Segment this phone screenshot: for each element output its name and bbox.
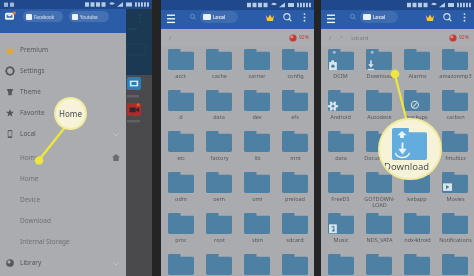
button[interactable]: Download bbox=[360, 46, 398, 87]
button[interactable]: Mail bbox=[5, 11, 16, 21]
staticText: NDS_VATA bbox=[366, 236, 393, 243]
button[interactable] bbox=[436, 251, 474, 276]
button[interactable]: Favorite bbox=[0, 102, 126, 123]
button[interactable]: Local bbox=[363, 11, 395, 23]
button[interactable]: Documents bbox=[360, 128, 398, 169]
button[interactable] bbox=[238, 251, 276, 276]
staticText: d bbox=[179, 113, 183, 120]
button[interactable]: Download bbox=[0, 210, 126, 231]
button[interactable]: Search path bbox=[188, 12, 198, 22]
staticText: FreeDS bbox=[331, 195, 350, 202]
button[interactable]: Alarms bbox=[398, 46, 436, 87]
button[interactable] bbox=[398, 251, 436, 276]
staticText: / bbox=[329, 34, 332, 41]
button[interactable]: Menu bbox=[164, 10, 178, 24]
button[interactable]: NDS_VATA bbox=[360, 210, 398, 251]
button[interactable]: odm bbox=[161, 169, 200, 210]
button[interactable]: DCIM bbox=[321, 46, 360, 87]
button[interactable]: omr bbox=[238, 169, 276, 210]
staticText: Youtube bbox=[80, 14, 98, 20]
button[interactable]: data bbox=[321, 128, 360, 169]
button[interactable]: Local bbox=[0, 123, 126, 144]
staticText: Local bbox=[373, 14, 386, 21]
button[interactable]: Android bbox=[321, 87, 360, 128]
button[interactable]: efs bbox=[276, 87, 314, 128]
button[interactable]: Download bbox=[398, 128, 436, 169]
staticText: Download bbox=[366, 72, 393, 79]
staticText: etc bbox=[177, 154, 185, 161]
button[interactable]: Autodesk bbox=[360, 87, 398, 128]
button[interactable]: Premium bbox=[263, 10, 277, 24]
button[interactable] bbox=[360, 251, 398, 276]
button[interactable]: etc bbox=[161, 128, 200, 169]
button[interactable]: Home bbox=[0, 147, 126, 168]
button[interactable]: Settings bbox=[0, 60, 126, 81]
button[interactable]: Internal Storage bbox=[0, 231, 126, 252]
button[interactable]: config bbox=[276, 46, 314, 87]
button[interactable]: Facebook bbox=[26, 11, 60, 22]
staticText: Autodesk bbox=[367, 113, 392, 120]
button[interactable]: d bbox=[161, 87, 200, 128]
button[interactable]: sbin bbox=[238, 210, 276, 251]
button[interactable]: dev bbox=[238, 87, 276, 128]
button[interactable]: GOTDOWN- LOAD bbox=[360, 169, 398, 210]
button[interactable]: carrier bbox=[238, 46, 276, 87]
staticText: config bbox=[287, 72, 304, 79]
button[interactable]: Music bbox=[321, 210, 360, 251]
staticText: dev bbox=[252, 113, 262, 120]
button[interactable]: Local bbox=[203, 11, 235, 23]
button[interactable]: amazonmp3 bbox=[436, 46, 474, 87]
button[interactable] bbox=[276, 251, 314, 276]
staticText: Local bbox=[20, 129, 36, 138]
button[interactable] bbox=[321, 251, 360, 276]
staticText: proc bbox=[175, 236, 187, 243]
button[interactable]: Premium bbox=[423, 10, 437, 24]
button[interactable]: Search bbox=[280, 10, 294, 24]
button[interactable]: Device bbox=[0, 189, 126, 210]
staticText: Home bbox=[59, 108, 83, 119]
button[interactable]: Theme bbox=[0, 81, 126, 102]
button[interactable]: factory bbox=[200, 128, 238, 169]
button[interactable]: Home bbox=[0, 168, 126, 189]
button[interactable]: lib bbox=[238, 128, 276, 169]
staticText: efs bbox=[291, 113, 299, 120]
button[interactable]: fmultizz bbox=[436, 128, 474, 169]
button[interactable]: data bbox=[200, 87, 238, 128]
button[interactable]: carbon bbox=[436, 87, 474, 128]
button[interactable]: Youtube bbox=[72, 11, 106, 22]
button[interactable]: More options bbox=[298, 11, 311, 24]
staticText: sdcard bbox=[351, 34, 369, 41]
button[interactable] bbox=[161, 251, 200, 276]
button[interactable] bbox=[200, 251, 238, 276]
button[interactable]: Search path bbox=[348, 12, 358, 22]
button[interactable]: acct bbox=[161, 46, 200, 87]
button[interactable]: mnt bbox=[276, 128, 314, 169]
button[interactable]: backups bbox=[398, 87, 436, 128]
staticText: Premium bbox=[20, 45, 49, 54]
button[interactable]: proc bbox=[161, 210, 200, 251]
staticText: Local bbox=[213, 14, 226, 21]
staticText: backups bbox=[406, 113, 428, 120]
button[interactable]: Search bbox=[440, 10, 454, 24]
staticText: Notifications bbox=[439, 236, 472, 243]
button[interactable]: Menu bbox=[324, 10, 338, 24]
button[interactable]: Premium bbox=[0, 39, 126, 60]
staticText: mnt bbox=[290, 154, 301, 161]
button[interactable]: kebapp bbox=[398, 169, 436, 210]
staticText: root bbox=[214, 236, 225, 243]
staticText: GOTDOWN- LOAD bbox=[364, 195, 395, 209]
button[interactable]: oem bbox=[200, 169, 238, 210]
staticText: / bbox=[169, 34, 172, 41]
button[interactable]: Library bbox=[0, 252, 126, 273]
button[interactable]: Notifications bbox=[436, 210, 474, 251]
button[interactable]: preload bbox=[276, 169, 314, 210]
button[interactable]: cache bbox=[200, 46, 238, 87]
button[interactable]: More options bbox=[458, 11, 471, 24]
button[interactable]: root bbox=[200, 210, 238, 251]
staticText: lib bbox=[254, 154, 261, 161]
button[interactable]: FreeDS bbox=[321, 169, 360, 210]
button[interactable]: sdcard bbox=[276, 210, 314, 251]
button[interactable]: ndx4droid bbox=[398, 210, 436, 251]
button[interactable]: Movies bbox=[436, 169, 474, 210]
staticText: Download bbox=[384, 160, 430, 173]
